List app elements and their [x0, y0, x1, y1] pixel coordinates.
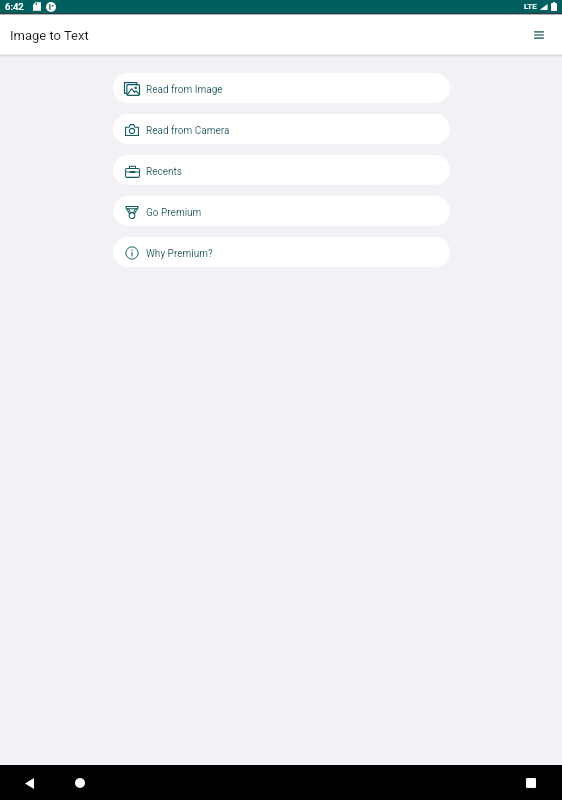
button[interactable]: Read from Camera: [113, 114, 450, 144]
button[interactable]: Open navigation menu: [528, 24, 550, 46]
staticText: Go Premium: [146, 207, 202, 219]
button[interactable]: Read from Image: [113, 73, 450, 103]
button[interactable]: Recents: [113, 155, 450, 185]
button[interactable]: Home: [69, 772, 91, 794]
button[interactable]: Why Premium?: [113, 237, 450, 267]
button[interactable]: Go Premium: [113, 196, 450, 226]
staticText: LTE: [524, 2, 537, 11]
button[interactable]: Back: [18, 772, 40, 794]
staticText: Read from Image: [146, 84, 223, 96]
staticText: Image to Text: [10, 28, 89, 43]
staticText: Why Premium?: [146, 248, 213, 260]
staticText: Recents: [146, 166, 182, 178]
staticText: 6:42: [5, 1, 24, 12]
button[interactable]: Recent apps: [520, 772, 542, 794]
staticText: Read from Camera: [146, 125, 230, 137]
